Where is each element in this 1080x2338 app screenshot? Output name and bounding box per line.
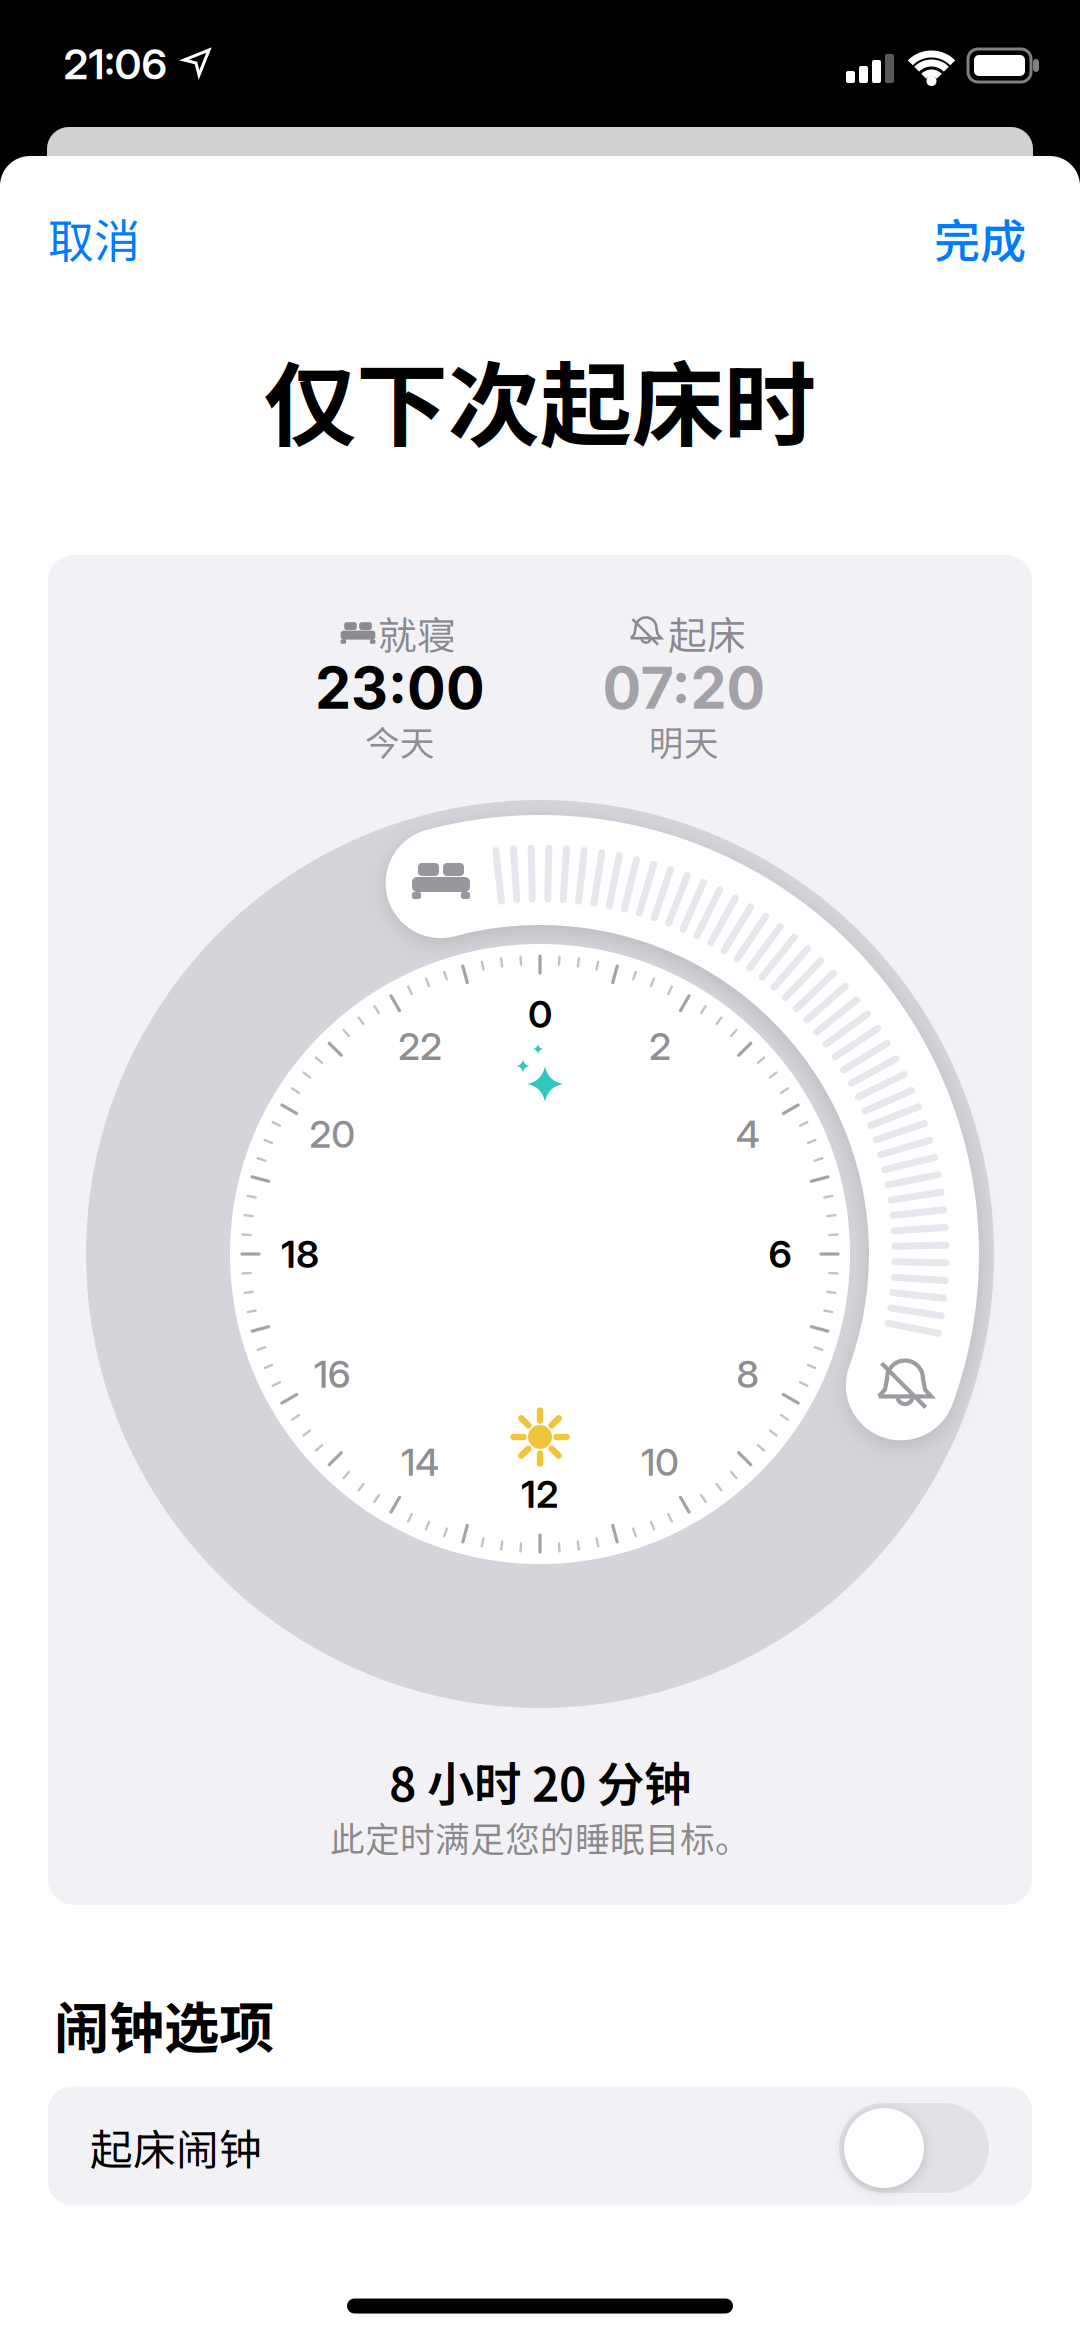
staticText: 4 [736,1111,760,1157]
staticText: 起床 [668,605,746,661]
staticText: 0 [528,991,552,1037]
staticText: 14 [401,1439,439,1485]
staticText: 取消 [48,205,140,271]
staticText: 10 [641,1439,679,1485]
staticText: 16 [314,1351,351,1397]
staticText: 2 [649,1023,671,1069]
staticText: 8 [736,1351,759,1397]
staticText: 就寝 [378,605,456,661]
staticText: 仅下次起床时 [264,332,816,466]
staticText: 21:06 [63,39,166,89]
staticText: 今天 [365,716,435,766]
staticText: 明天 [649,716,719,766]
staticText: 此定时满足您的睡眠目标。 [330,1812,750,1862]
staticText: 23:00 [315,653,485,723]
staticText: 6 [768,1231,791,1277]
staticText: 20 [309,1111,355,1157]
staticText: 18 [281,1231,319,1277]
staticText: 闹钟选项 [54,1984,274,2064]
staticText: 8 小时 20 分钟 [389,1747,691,1815]
staticText: 完成 [934,205,1026,271]
staticText: 起床闹钟 [90,2116,262,2178]
staticText: 22 [398,1023,442,1069]
staticText: 12 [521,1471,559,1517]
staticText: 07:20 [602,653,765,723]
